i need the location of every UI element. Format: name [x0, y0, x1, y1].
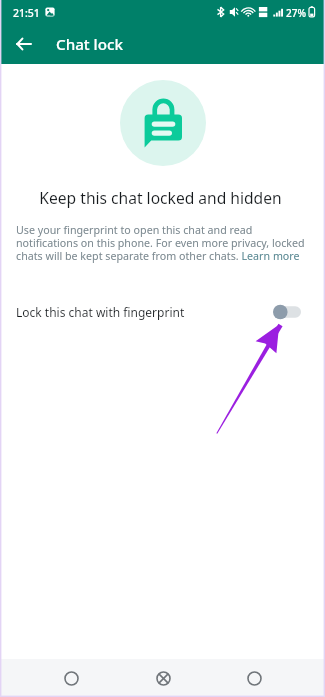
button[interactable]: Back: [51, 659, 91, 697]
button[interactable]: Back: [8, 28, 40, 60]
button[interactable]: Lock this chat with fingerprint: [0, 295, 325, 329]
staticText: Keep this chat locked and hidden: [39, 187, 282, 208]
button[interactable]: Recents: [234, 659, 274, 697]
staticText: Chat lock: [56, 34, 123, 55]
button[interactable]: Home: [143, 659, 183, 697]
staticText: Use your fingerprint to open this chat a…: [16, 223, 311, 263]
staticText: 27%: [286, 6, 306, 20]
staticText: 21:51: [13, 6, 40, 20]
staticText: Lock this chat with fingerprint: [16, 304, 185, 320]
button[interactable]: Lock this chat with fingerprint: [273, 301, 309, 323]
